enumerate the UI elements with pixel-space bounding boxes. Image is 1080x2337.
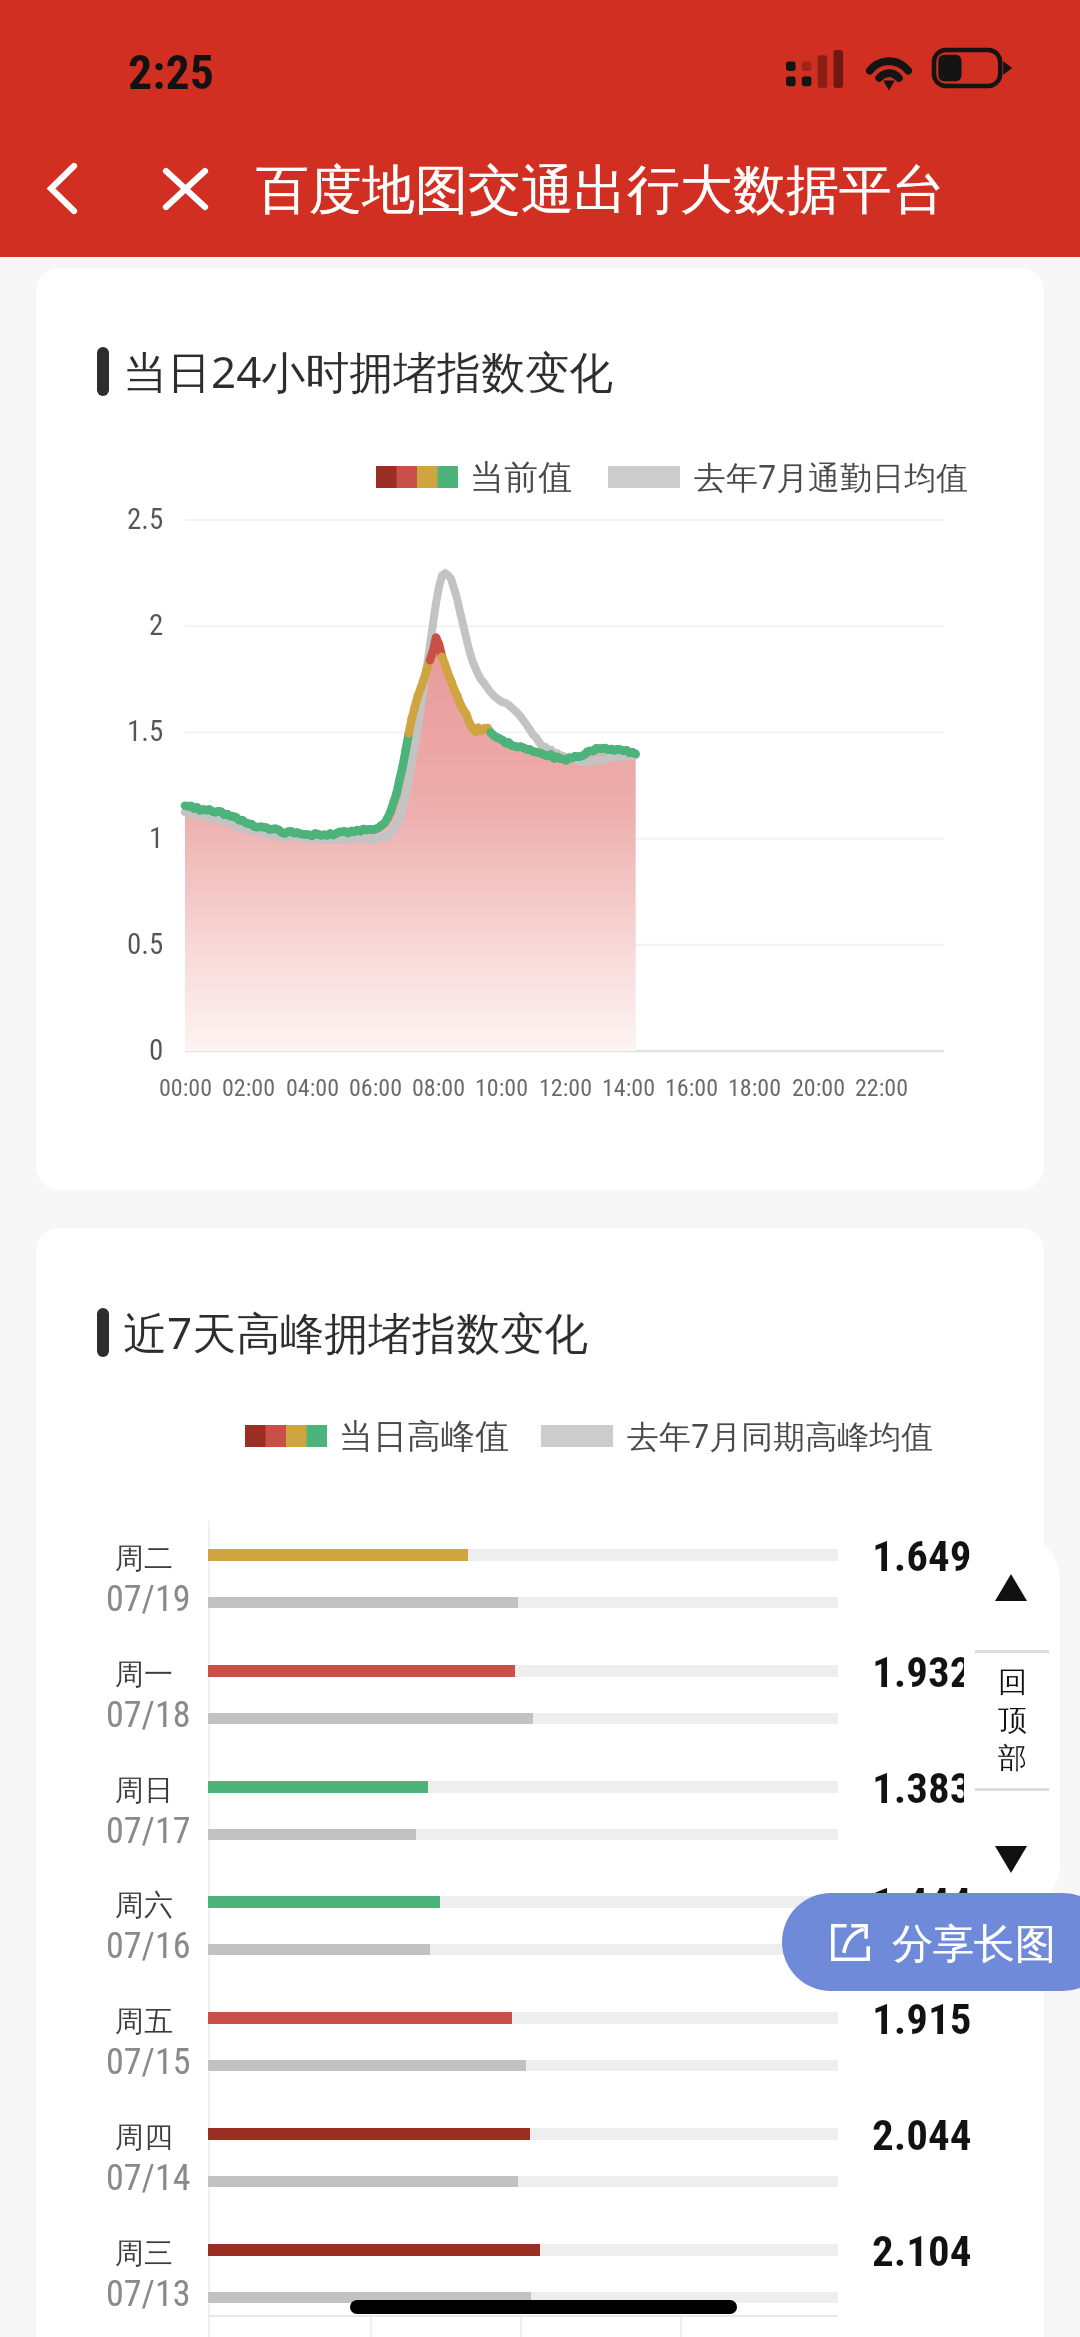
staticText: 06:00 — [349, 1074, 402, 1102]
staticText: 2.5 — [127, 502, 164, 536]
staticText: 07/15 — [106, 2041, 191, 2083]
staticText: 12:00 — [539, 1074, 592, 1102]
button[interactable]: Scroll down — [964, 1790, 1060, 1912]
staticText: 去年7月同期高峰均值 — [627, 1414, 934, 1458]
staticText: 去年7月通勤日均值 — [694, 455, 969, 499]
staticText: 当日24小时拥堵指数变化 — [123, 341, 614, 401]
staticText: 07/18 — [106, 1694, 191, 1736]
staticText: 02:00 — [222, 1074, 275, 1102]
staticText: 周六 — [115, 1887, 173, 1924]
staticText: 18:00 — [728, 1074, 781, 1102]
staticText: 07/16 — [106, 1925, 191, 1967]
staticText: 20:00 — [792, 1074, 845, 1102]
staticText: 周四 — [115, 2119, 173, 2156]
staticText: 10:00 — [475, 1074, 528, 1102]
staticText: 16:00 — [665, 1074, 718, 1102]
button[interactable]: Scroll up — [964, 1532, 1060, 1650]
staticText: 00:00 — [159, 1074, 212, 1102]
staticText: 0 — [149, 1033, 164, 1067]
staticText: 当日高峰值 — [339, 1415, 509, 1458]
staticText: 04:00 — [286, 1074, 339, 1102]
staticText: 周日 — [115, 1772, 173, 1809]
staticText: 07/13 — [106, 2273, 191, 2315]
button[interactable]: Close — [128, 131, 244, 257]
button[interactable]: Back — [12, 131, 116, 257]
staticText: 08:00 — [412, 1074, 465, 1102]
staticText: 2.104 — [872, 2226, 972, 2276]
staticText: 1.444 — [872, 1878, 972, 1928]
staticText: 2.044 — [872, 2110, 972, 2160]
staticText: 1.649 — [872, 1531, 972, 1581]
staticText: 1.383 — [872, 1763, 972, 1813]
staticText: 1.5 — [127, 714, 164, 748]
staticText: 回 顶 部 — [998, 1664, 1027, 1777]
staticText: 07/17 — [106, 1810, 191, 1852]
staticText: 0.5 — [127, 927, 164, 961]
staticText: 1 — [149, 821, 164, 855]
staticText: 周五 — [115, 2003, 173, 2040]
staticText: 周三 — [115, 2235, 173, 2272]
staticText: 1.932 — [872, 1647, 972, 1697]
staticText: 百度地图交通出行大数据平台 — [256, 157, 945, 224]
staticText: 07/19 — [106, 1578, 191, 1620]
staticText: 2 — [149, 608, 164, 642]
staticText: 分享长图 — [892, 1919, 1056, 1971]
staticText: 22:00 — [855, 1074, 908, 1102]
button[interactable]: 回 顶 部 — [964, 1653, 1060, 1788]
button[interactable]: 分享长图 — [782, 1893, 1080, 1991]
staticText: 当前值 — [470, 456, 572, 499]
staticText: 近7天高峰拥堵指数变化 — [123, 1302, 589, 1362]
staticText: 周二 — [115, 1540, 173, 1577]
staticText: 07/14 — [106, 2157, 191, 2199]
staticText: 2:25 — [128, 44, 214, 100]
staticText: 14:00 — [602, 1074, 655, 1102]
staticText: 周一 — [115, 1656, 173, 1693]
staticText: 1.915 — [872, 1994, 972, 2044]
